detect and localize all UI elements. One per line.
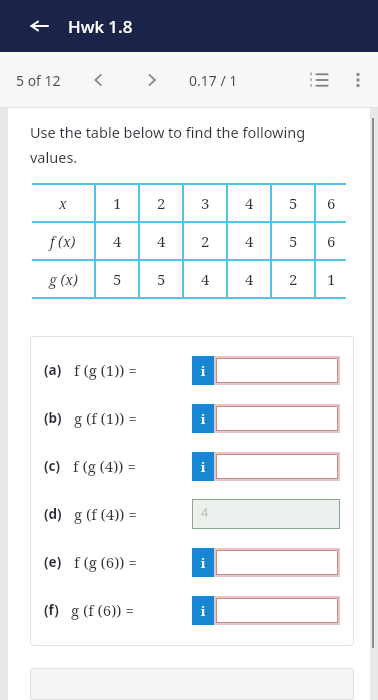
staticText: 6 xyxy=(327,193,336,213)
staticText: 4 xyxy=(245,231,254,251)
staticText: g (x) xyxy=(49,270,78,289)
staticText: 4 xyxy=(245,269,254,289)
staticText: 3 xyxy=(201,193,210,213)
button[interactable]: More options xyxy=(338,60,378,100)
staticText: i xyxy=(201,459,206,475)
staticText: 5 xyxy=(289,193,298,213)
button[interactable] xyxy=(216,550,338,575)
staticText: (d) xyxy=(44,505,62,523)
staticText: i xyxy=(201,555,206,571)
staticText: 2 xyxy=(289,269,298,289)
staticText: (e) xyxy=(44,553,62,571)
staticText: Use the table below to find the followin… xyxy=(30,122,306,142)
staticText: 5 of 12 xyxy=(16,71,61,90)
staticText: (c) xyxy=(44,457,61,475)
staticText: (f) xyxy=(44,601,59,619)
button[interactable]: (a) xyxy=(30,346,354,394)
staticText: 4 xyxy=(201,503,209,521)
staticText: (a) xyxy=(44,361,62,379)
button[interactable]: Next xyxy=(135,63,169,97)
staticText: 5 xyxy=(289,231,298,251)
staticText: 5 xyxy=(157,269,166,289)
button[interactable]: Back xyxy=(22,9,56,43)
button[interactable] xyxy=(216,358,338,383)
button[interactable]: (b) xyxy=(30,394,354,442)
staticText: f (g (1)) = xyxy=(74,360,137,380)
button[interactable]: Info xyxy=(192,548,214,577)
staticText: g (f (1)) = xyxy=(74,408,137,428)
staticText: 2 xyxy=(157,193,166,213)
staticText: f (g (6)) = xyxy=(74,552,137,572)
staticText: 4 xyxy=(113,231,122,251)
staticText: 1 xyxy=(113,193,122,213)
staticText: i xyxy=(201,411,206,427)
button[interactable]: Info xyxy=(192,356,214,385)
staticText: Hwk 1.8 xyxy=(68,15,133,38)
button[interactable] xyxy=(216,598,338,623)
button[interactable] xyxy=(216,454,338,479)
staticText: 1 xyxy=(327,269,336,289)
button[interactable]: (d) xyxy=(30,490,354,538)
button[interactable]: (c) xyxy=(30,442,354,490)
staticText: 2 xyxy=(201,231,210,251)
staticText: f (x) xyxy=(50,232,76,251)
staticText: 6 xyxy=(327,231,336,251)
button[interactable]: (e) xyxy=(30,538,354,586)
staticText: 0.17 / 1 xyxy=(189,71,238,90)
staticText: g (f (6)) = xyxy=(71,600,134,620)
button[interactable]: Info xyxy=(192,404,214,433)
staticText: 4 xyxy=(201,269,210,289)
button[interactable]: Info xyxy=(192,596,214,625)
staticText: f (g (4)) = xyxy=(73,456,136,476)
button[interactable]: Question list xyxy=(300,61,338,99)
button[interactable]: Info xyxy=(192,452,214,481)
staticText: g (f (4)) = xyxy=(74,504,137,524)
button[interactable]: (f) xyxy=(30,586,354,634)
button[interactable]: Previous xyxy=(81,63,115,97)
button[interactable] xyxy=(216,406,338,431)
staticText: 5 xyxy=(113,269,122,289)
staticText: (b) xyxy=(44,409,62,427)
staticText: i xyxy=(201,603,206,619)
staticText: i xyxy=(201,363,206,379)
staticText: values. xyxy=(30,147,78,167)
staticText: x xyxy=(59,194,67,213)
staticText: 4 xyxy=(157,231,166,251)
staticText: 4 xyxy=(245,193,254,213)
